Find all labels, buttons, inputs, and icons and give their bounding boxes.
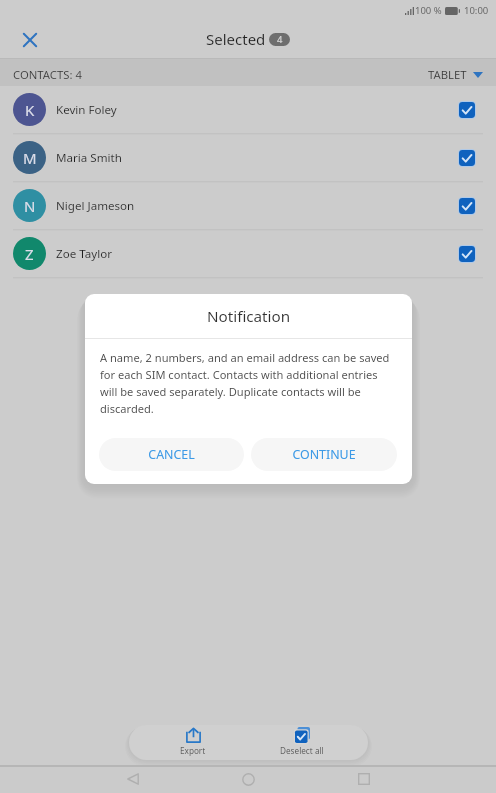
button[interactable]: Deselect all	[270, 725, 334, 759]
staticText: CONTINUE	[292, 446, 356, 463]
staticText: Maria Smith	[56, 150, 122, 166]
staticText: A name, 2 numbers, and an email address …	[100, 350, 397, 417]
button[interactable]: N	[0, 182, 496, 230]
button[interactable]: CANCEL	[99, 438, 244, 471]
button[interactable]: Z	[0, 230, 496, 278]
staticText: 100 %	[415, 4, 442, 17]
staticText: M	[23, 148, 37, 168]
button[interactable]: Back	[117, 765, 149, 793]
button[interactable]: Home	[232, 765, 264, 793]
staticText: Selected	[206, 29, 266, 49]
staticText: CONTACTS: 4	[13, 67, 82, 82]
staticText: Notification	[207, 306, 291, 327]
button[interactable]: Close	[14, 24, 45, 55]
button[interactable]: Recents	[348, 765, 380, 793]
button[interactable]: TABLET	[428, 67, 483, 82]
staticText: Zoe Taylor	[56, 246, 112, 262]
staticText: N	[24, 196, 36, 216]
button[interactable]: M	[0, 134, 496, 182]
staticText: Kevin Foley	[56, 102, 117, 118]
staticText: Deselect all	[280, 745, 324, 756]
staticText: Z	[25, 244, 34, 264]
button[interactable]: Export	[161, 725, 225, 759]
staticText: 4	[277, 33, 283, 46]
button[interactable]: K	[0, 86, 496, 134]
button[interactable]: CONTINUE	[251, 438, 397, 471]
staticText: Export	[180, 745, 206, 756]
staticText: CANCEL	[148, 446, 195, 463]
staticText: 10:00	[464, 4, 489, 17]
staticText: K	[25, 100, 35, 120]
staticText: Nigel Jameson	[56, 198, 135, 214]
staticText: TABLET	[428, 67, 467, 82]
